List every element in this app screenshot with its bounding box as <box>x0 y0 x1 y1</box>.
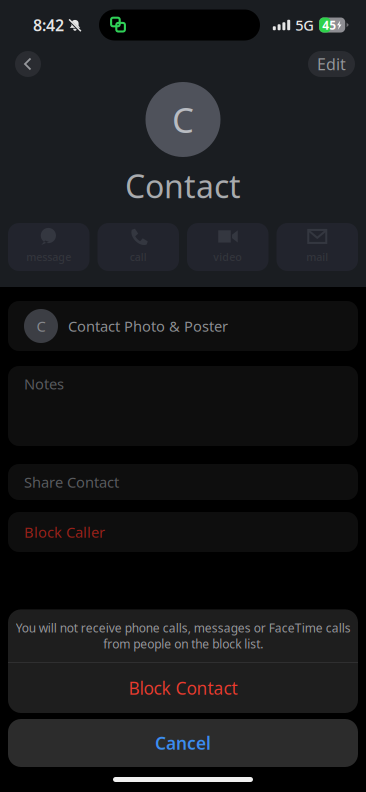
staticText: 5G <box>295 15 314 35</box>
button[interactable]: C <box>8 301 358 351</box>
staticText: Contact Photo & Poster <box>68 316 228 336</box>
staticText: Contact <box>125 164 241 207</box>
button[interactable]: Edit <box>308 51 355 77</box>
staticText: message <box>26 250 71 264</box>
staticText: Share Contact <box>24 472 119 492</box>
staticText: 8:42 <box>33 14 64 36</box>
staticText: Cancel <box>155 731 211 754</box>
button[interactable]: message <box>8 223 89 271</box>
button[interactable]: Cancel <box>8 719 358 767</box>
staticText: You will not receive phone calls, messag… <box>15 620 350 652</box>
staticText: Block Contact <box>128 676 237 699</box>
staticText: call <box>130 250 147 264</box>
button[interactable]: Share Contact <box>8 464 358 500</box>
button[interactable]: Block Caller <box>8 512 358 552</box>
button[interactable]: Block Contact <box>8 663 358 713</box>
button[interactable]: call <box>97 223 179 271</box>
button[interactable]: Back <box>11 47 45 81</box>
staticText: Notes <box>24 374 64 393</box>
staticText: C <box>36 316 45 336</box>
staticText: C <box>172 96 194 142</box>
staticText: video <box>213 250 242 264</box>
button[interactable]: mail <box>276 223 358 271</box>
staticText: Edit <box>317 53 346 75</box>
staticText: Block Caller <box>24 522 105 542</box>
staticText: 45 <box>322 17 336 33</box>
button[interactable]: video <box>187 223 268 271</box>
staticText: mail <box>306 250 328 264</box>
